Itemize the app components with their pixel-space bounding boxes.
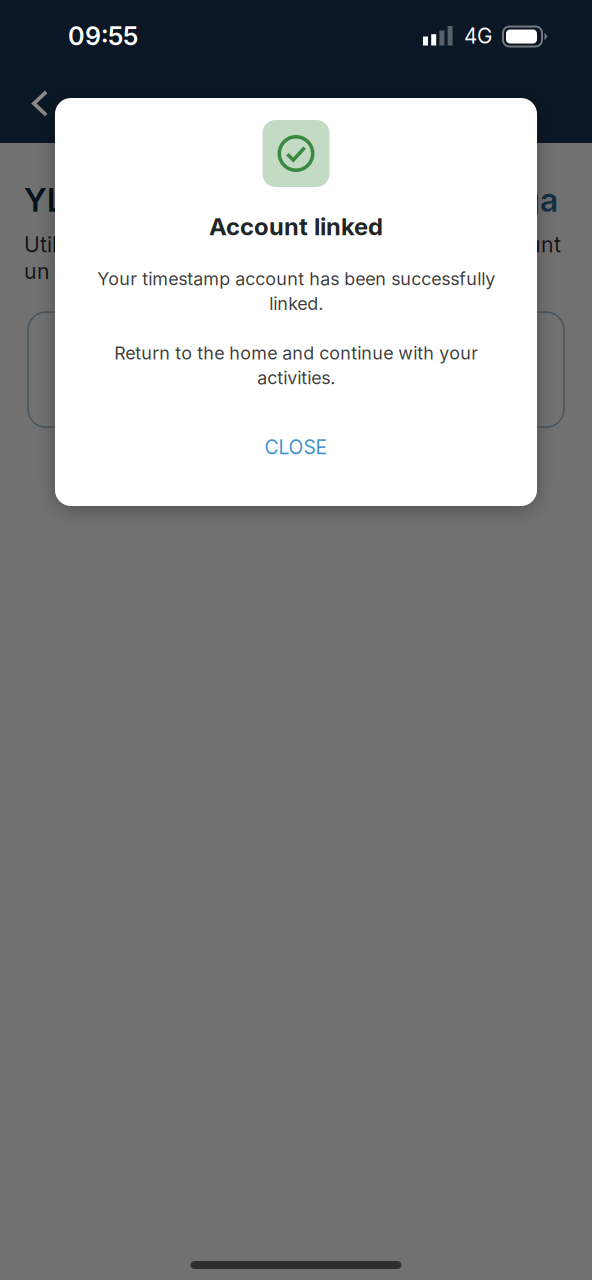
- staticText: Codice di collegamento: [54, 334, 234, 354]
- staticText: YLIMARKA TIMBRATURE: [24, 180, 406, 219]
- staticText: Return to the home and continue with you…: [114, 342, 478, 388]
- button[interactable]: Back: [0, 82, 63, 133]
- staticText: Utilizza il codice qui sotto per collega…: [24, 231, 561, 284]
- staticText: DKS-9832-PQ: [54, 376, 219, 405]
- staticText: 09:55: [68, 21, 138, 51]
- staticText: Account linked: [209, 212, 383, 241]
- staticText: CLOSE: [264, 435, 327, 459]
- staticText: Collega: [442, 180, 558, 219]
- staticText: 4G: [464, 23, 492, 48]
- button[interactable]: CLOSE: [238, 388, 353, 485]
- staticText: Your timestamp account has been successf…: [97, 268, 495, 314]
